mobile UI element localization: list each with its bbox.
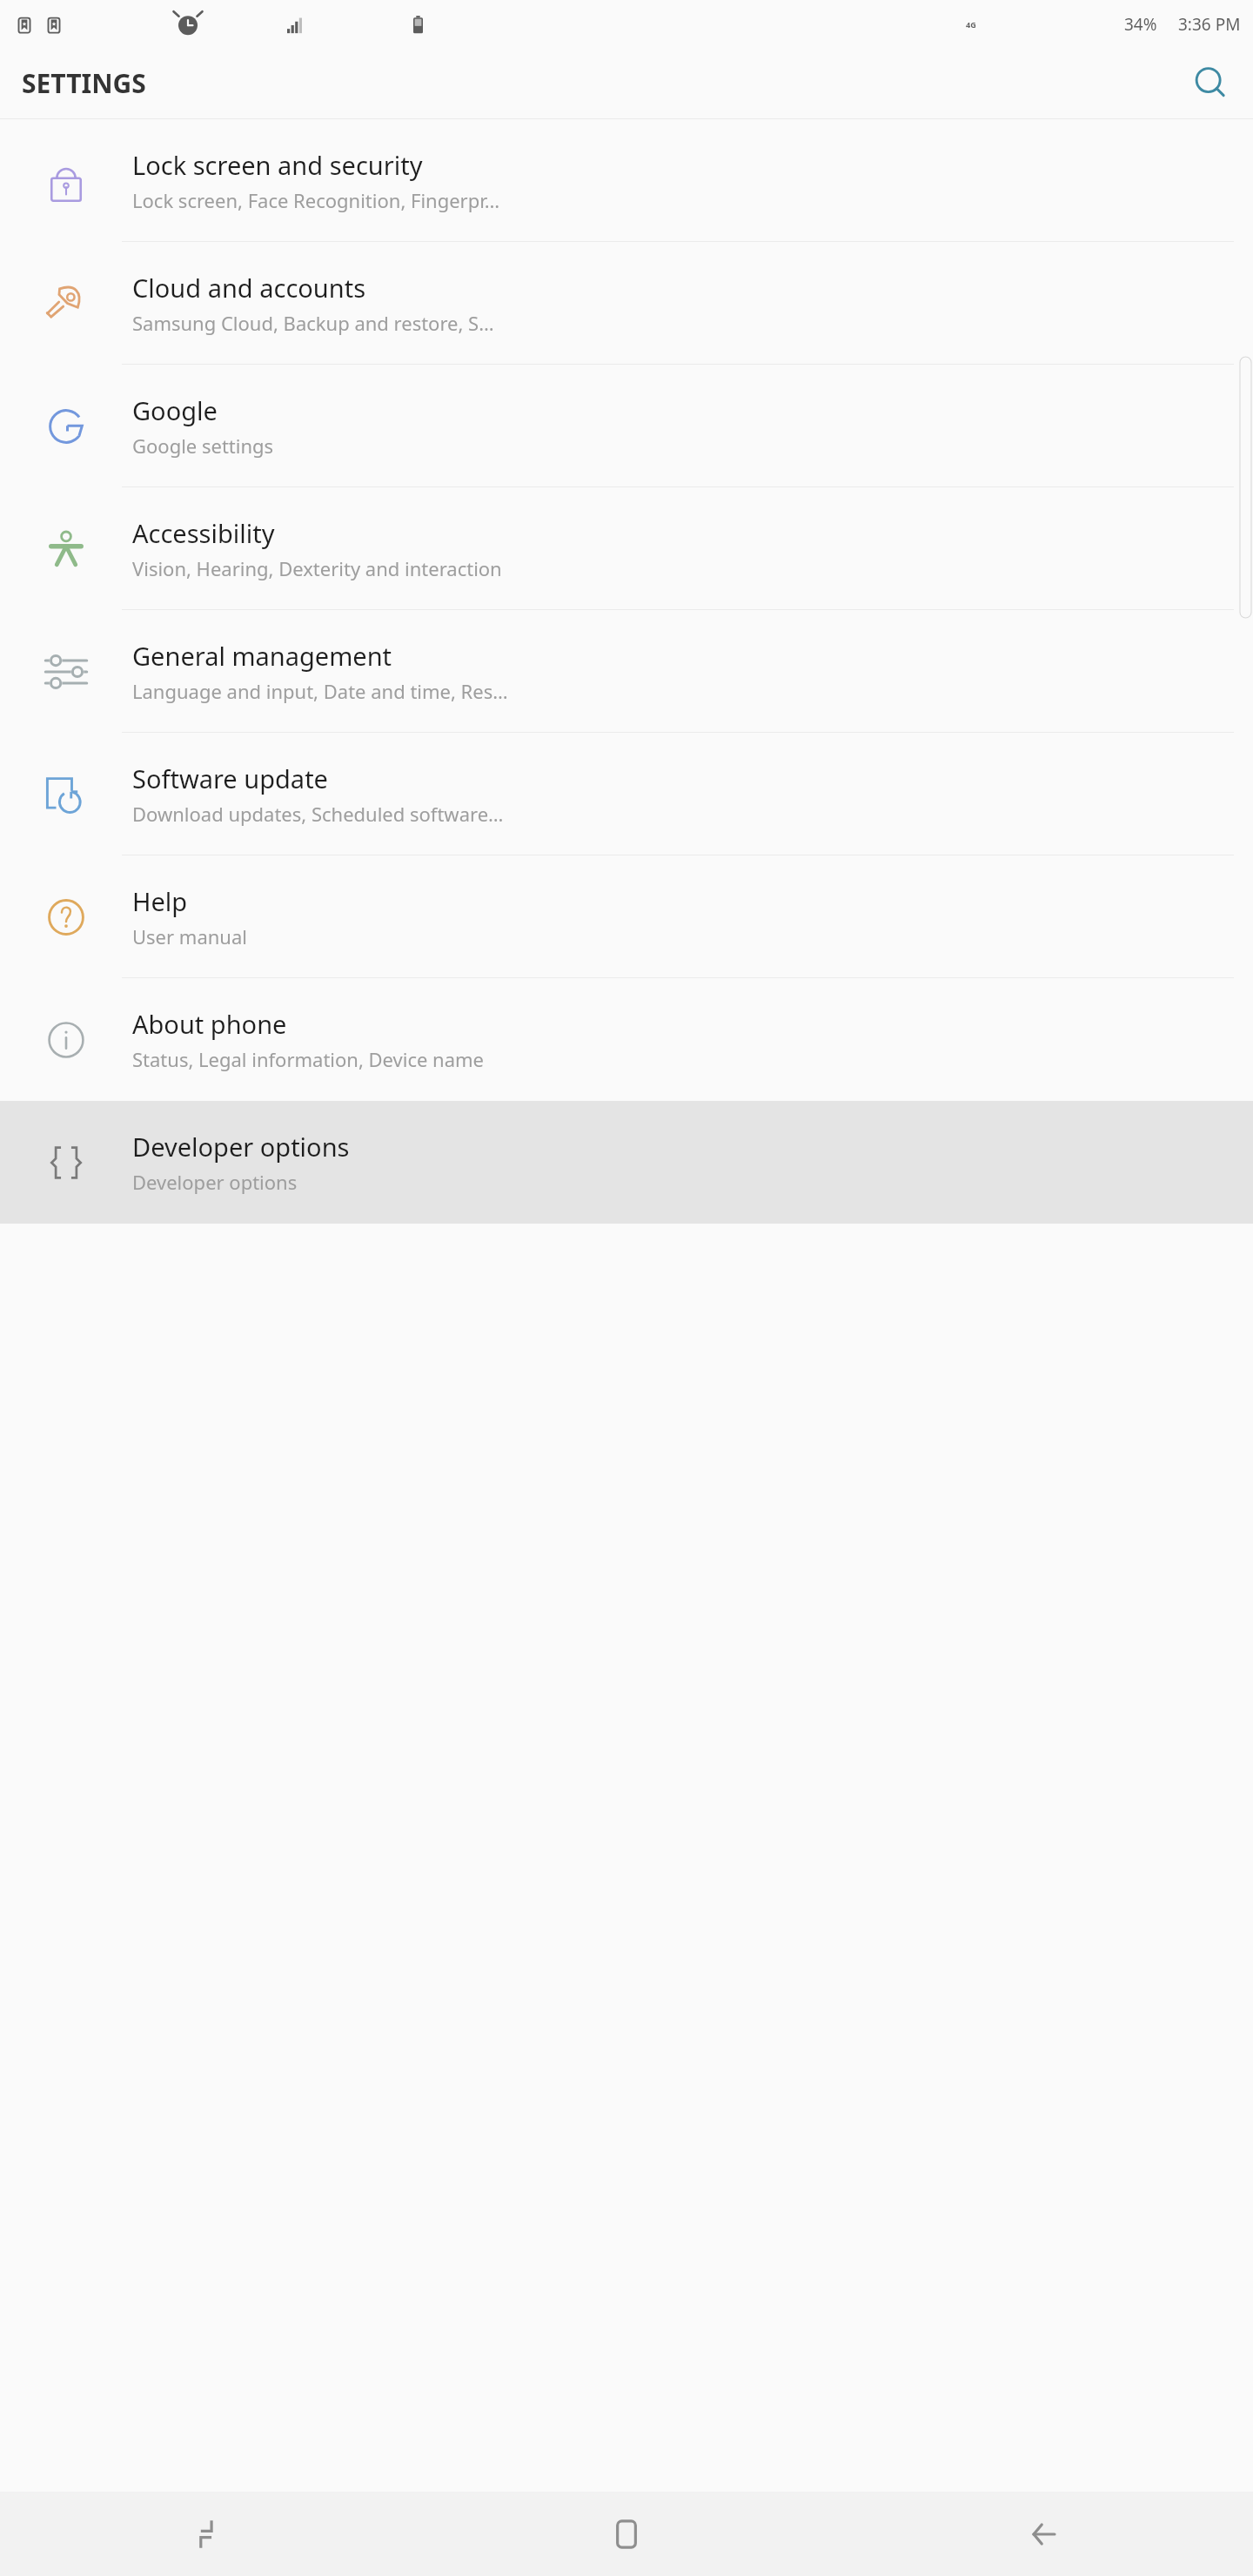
staticText: Cloud and accounts: [132, 271, 366, 305]
button[interactable]: Lock screen and security: [0, 119, 1253, 242]
staticText: General management: [132, 639, 392, 673]
staticText: Vision, Hearing, Dexterity and interacti…: [132, 555, 502, 581]
staticText: 34%: [1124, 13, 1157, 36]
button[interactable]: Home: [418, 2492, 835, 2576]
staticText: Developer options: [132, 1130, 350, 1164]
staticText: Download updates, Scheduled software…: [132, 801, 504, 827]
button[interactable]: General management: [0, 610, 1253, 733]
staticText: About phone: [132, 1007, 287, 1041]
button[interactable]: Back: [835, 2492, 1253, 2576]
staticText: Google settings: [132, 433, 274, 459]
staticText: 4G: [966, 19, 976, 30]
staticText: Samsung Cloud, Backup and restore, S…: [132, 310, 494, 336]
staticText: Language and input, Date and time, Res…: [132, 678, 508, 704]
button[interactable]: Cloud and accounts: [0, 242, 1253, 365]
staticText: User manual: [132, 923, 247, 949]
staticText: Lock screen and security: [132, 148, 423, 182]
button[interactable]: Recents: [0, 2492, 418, 2576]
staticText: Software update: [132, 761, 328, 795]
staticText: Lock screen, Face Recognition, Fingerpr…: [132, 187, 500, 213]
button[interactable]: Search: [1187, 59, 1236, 108]
button[interactable]: Help: [0, 855, 1253, 978]
button[interactable]: Google: [0, 365, 1253, 487]
staticText: Google: [132, 393, 218, 427]
staticText: Developer options: [132, 1169, 298, 1195]
button[interactable]: Accessibility: [0, 487, 1253, 610]
button[interactable]: Software update: [0, 733, 1253, 855]
staticText: Accessibility: [132, 516, 275, 550]
staticText: 3:36 PM: [1178, 13, 1241, 36]
staticText: Help: [132, 884, 188, 918]
button[interactable]: About phone: [0, 978, 1253, 1101]
staticText: SETTINGS: [22, 65, 146, 101]
button[interactable]: Developer options: [0, 1101, 1253, 1224]
staticText: Status, Legal information, Device name: [132, 1046, 485, 1072]
